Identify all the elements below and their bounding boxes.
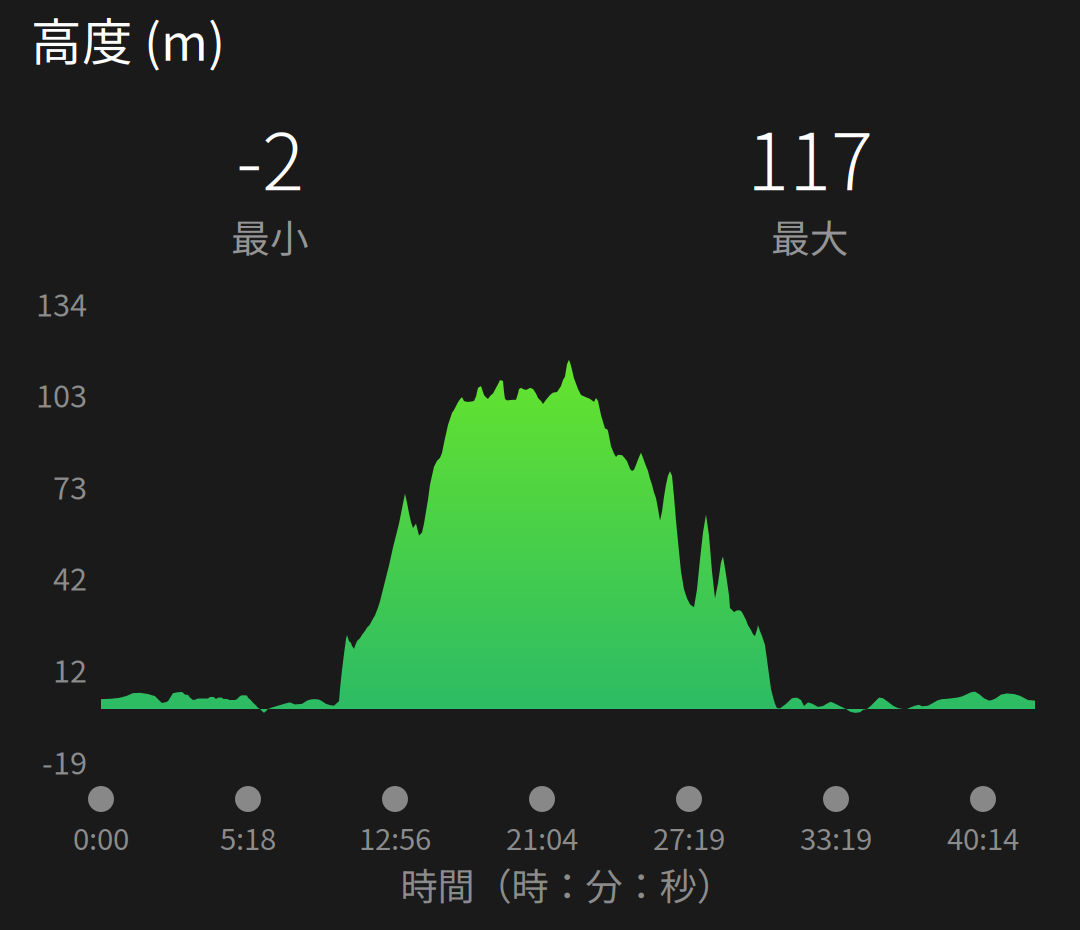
button[interactable]: -2 [0, 99, 540, 264]
staticText: 時間（時：分：秒） [400, 857, 733, 911]
staticText: 12:56 [359, 816, 431, 858]
staticText: 21:04 [506, 816, 578, 858]
staticText: 高度 (m) [31, 2, 225, 75]
staticText: 27:19 [653, 816, 725, 858]
staticText: 5:18 [220, 816, 276, 858]
staticText: 117 [747, 99, 873, 213]
button[interactable]: 高度グラフ [101, 308, 1035, 766]
staticText: 42 [53, 555, 87, 599]
staticText: 73 [53, 464, 87, 508]
staticText: 最小 [231, 208, 309, 264]
button[interactable]: 117 [540, 99, 1080, 264]
staticText: -19 [42, 739, 87, 783]
staticText: 最大 [771, 208, 849, 264]
staticText: 12 [53, 647, 87, 691]
staticText: 103 [36, 372, 87, 416]
staticText: -2 [236, 99, 304, 213]
staticText: 134 [36, 281, 87, 325]
staticText: 0:00 [73, 816, 129, 858]
staticText: 40:14 [947, 816, 1019, 858]
staticText: 33:19 [800, 816, 872, 858]
